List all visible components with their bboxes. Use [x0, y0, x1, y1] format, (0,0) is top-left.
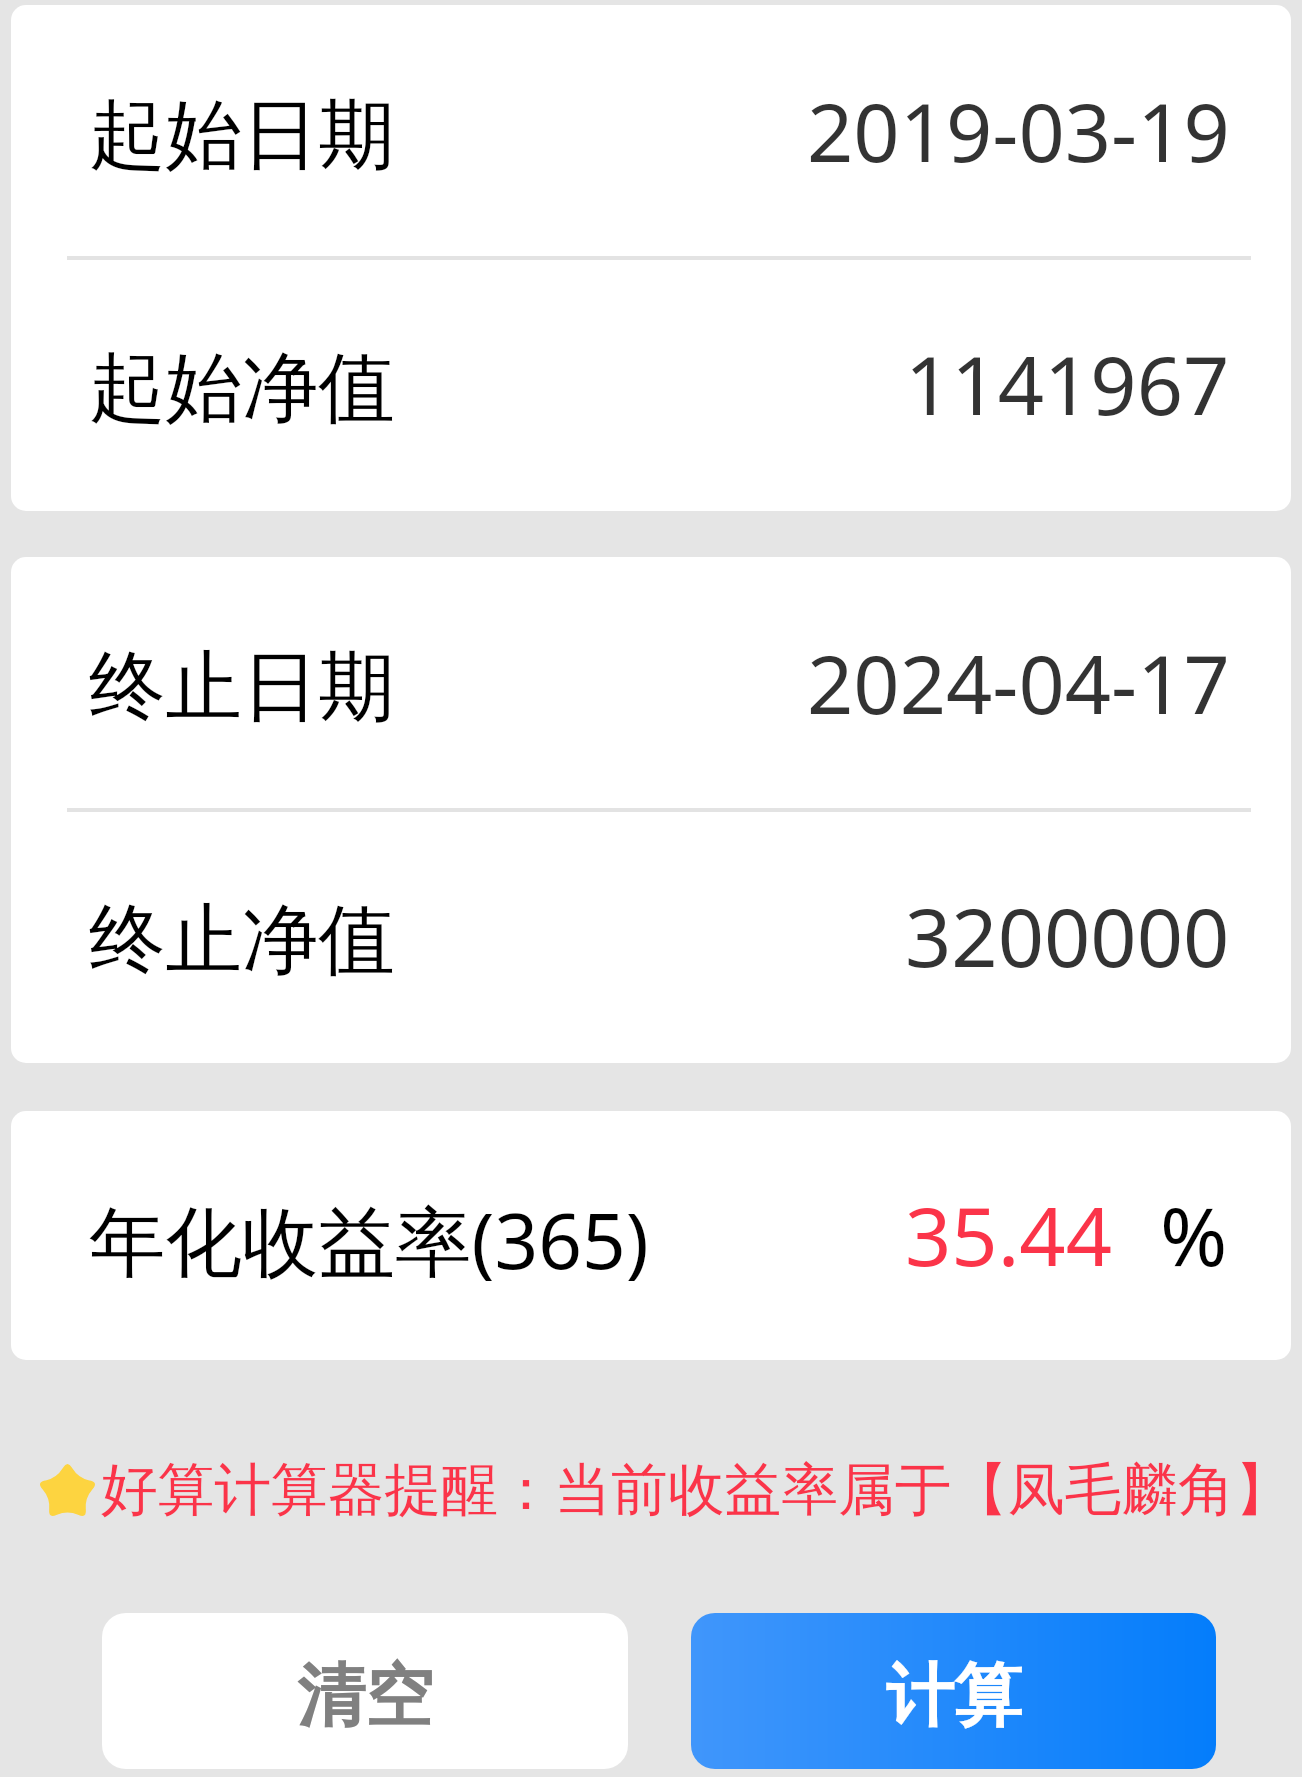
- staticText: 起始净值: [89, 340, 395, 436]
- staticText: %: [1160, 1179, 1228, 1289]
- staticText: 计算: [886, 1654, 1022, 1740]
- staticText: 清空: [297, 1654, 433, 1740]
- button[interactable]: 计算: [691, 1613, 1216, 1769]
- staticText: 终止净值: [89, 892, 395, 988]
- staticText: 2024-04-17: [807, 627, 1230, 737]
- staticText: 35.44: [905, 1179, 1113, 1289]
- staticText: 年化收益率(365): [89, 1187, 649, 1291]
- button[interactable]: 起始净值: [11, 258, 1291, 511]
- staticText: 2019-03-19: [807, 75, 1230, 185]
- button[interactable]: 终止净值: [11, 810, 1291, 1063]
- staticText: 终止日期: [89, 639, 395, 735]
- button[interactable]: 终止日期: [11, 557, 1291, 810]
- other: Star: [40, 1464, 95, 1516]
- staticText: 1141967: [905, 328, 1230, 438]
- button[interactable]: 清空: [102, 1613, 628, 1769]
- staticText: 好算计算器提醒：当前收益率属于【凤毛麟角】: [101, 1454, 1292, 1525]
- button[interactable]: 年化收益率(365): [11, 1111, 1291, 1360]
- button[interactable]: 起始日期: [11, 5, 1291, 258]
- staticText: 起始日期: [89, 87, 395, 183]
- staticText: 3200000: [905, 880, 1230, 990]
